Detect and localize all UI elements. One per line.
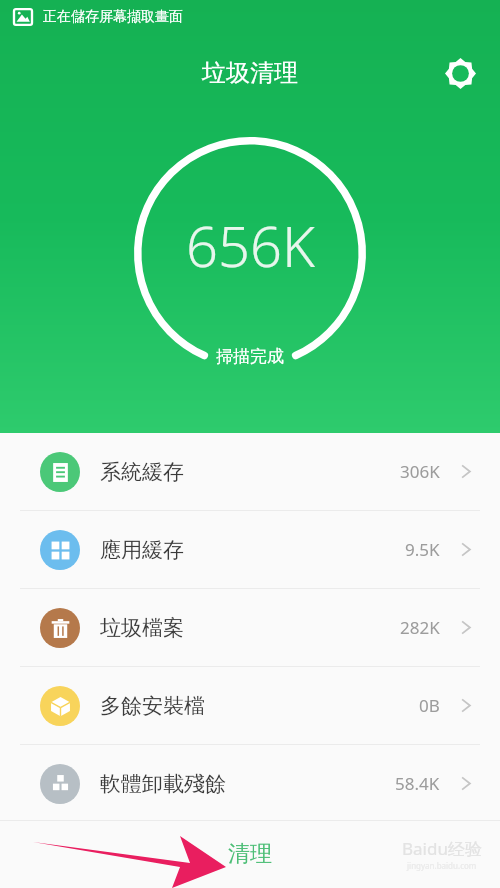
- staticText: 306K: [400, 460, 440, 483]
- staticText: 58.4K: [395, 772, 440, 795]
- staticText: jingyan.baidu.com: [407, 860, 477, 871]
- staticText: Baidu经验: [402, 837, 482, 860]
- staticText: 正在儲存屏幕擷取畫面: [43, 8, 183, 26]
- staticText: 9.5K: [405, 538, 440, 561]
- staticText: 軟體卸載殘餘: [100, 771, 226, 797]
- staticText: 垃圾清理: [202, 58, 298, 88]
- staticText: 清理: [228, 840, 272, 868]
- button[interactable]: Settings: [442, 55, 478, 91]
- button[interactable]: 清理: [190, 820, 310, 888]
- staticText: 掃描完成: [216, 346, 284, 367]
- staticText: 0B: [419, 694, 440, 717]
- button[interactable]: 軟體卸載殘餘: [0, 745, 500, 822]
- staticText: 656K: [186, 207, 315, 283]
- staticText: 垃圾檔案: [100, 615, 184, 641]
- staticText: 應用緩存: [100, 537, 184, 563]
- button[interactable]: 垃圾檔案: [0, 589, 500, 666]
- button[interactable]: 應用緩存: [0, 511, 500, 588]
- button[interactable]: 系統緩存: [0, 433, 500, 510]
- staticText: 282K: [400, 616, 440, 639]
- button[interactable]: 多餘安裝檔: [0, 667, 500, 744]
- staticText: 多餘安裝檔: [100, 693, 205, 719]
- staticText: 系統緩存: [100, 459, 184, 485]
